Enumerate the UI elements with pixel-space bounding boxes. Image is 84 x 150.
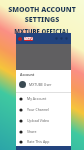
staticText: Share <box>27 129 37 134</box>
button[interactable]: Menu <box>18 37 22 41</box>
button[interactable]: Action <box>60 37 63 40</box>
button[interactable]: Action <box>65 37 68 40</box>
button[interactable]: MXTUBE User <box>19 81 68 88</box>
button[interactable]: Rate This App <box>16 137 71 146</box>
staticText: Upload Video <box>27 118 50 123</box>
staticText: SMOOTH ACCOUNT SETTINGS <box>0 5 84 25</box>
button[interactable]: My Account <box>16 93 71 104</box>
staticText: MXTUBE OFFICIAL <box>14 28 70 36</box>
button[interactable]: Action <box>55 37 58 40</box>
staticText: Account <box>20 72 35 77</box>
staticText: MXTUBE <box>24 37 33 41</box>
button[interactable]: Upload Video <box>16 115 71 126</box>
staticText: Rate This App <box>27 139 50 144</box>
button[interactable]: Share <box>16 126 71 137</box>
staticText: Your Channel <box>27 107 49 112</box>
button[interactable]: MXTUBE <box>24 37 33 41</box>
staticText: My Account <box>27 96 47 101</box>
button[interactable]: Your Channel <box>16 104 71 115</box>
staticText: MXTUBE User <box>29 82 52 87</box>
